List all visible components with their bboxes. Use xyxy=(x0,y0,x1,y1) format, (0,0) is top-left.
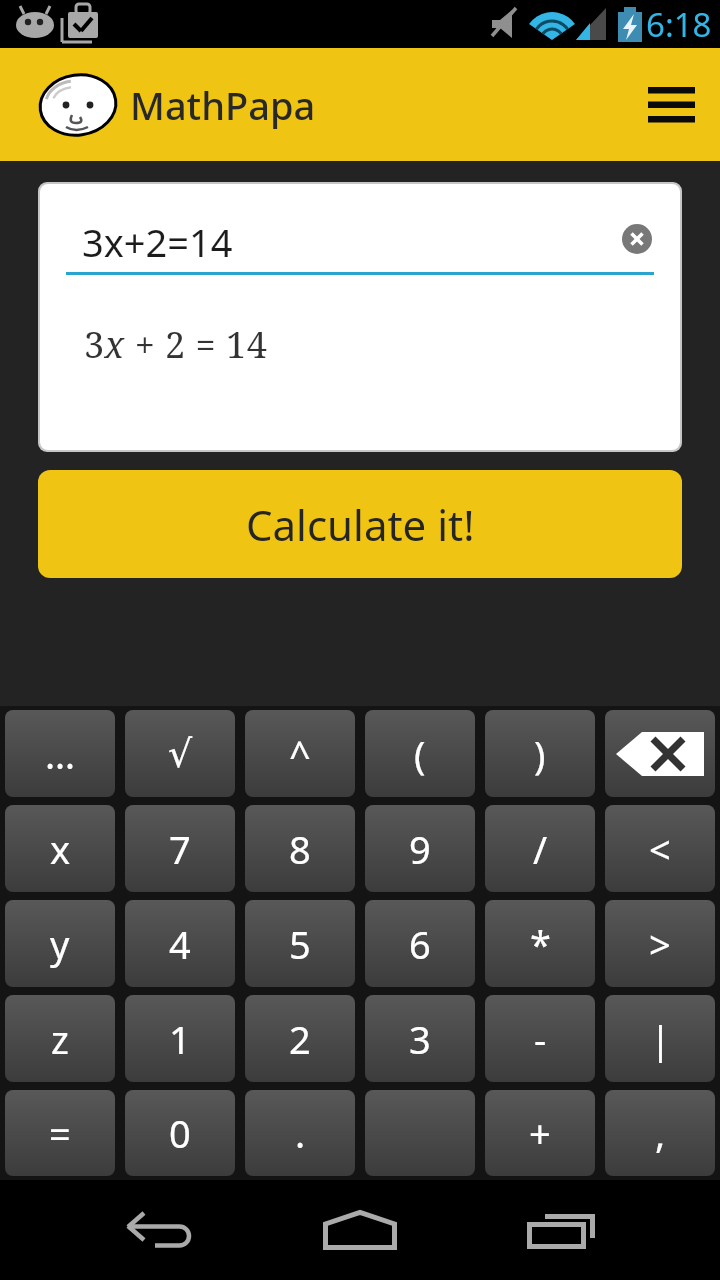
staticText: 6:18 xyxy=(646,2,712,47)
button[interactable]: ) xyxy=(485,710,595,797)
button[interactable]: 8 xyxy=(245,805,355,892)
staticText: ) xyxy=(534,728,546,780)
button[interactable]: 1 xyxy=(125,995,235,1082)
staticText: y xyxy=(50,918,70,970)
staticText: 6 xyxy=(409,918,431,970)
button[interactable]: 2 xyxy=(245,995,355,1082)
staticText: ( xyxy=(414,728,426,780)
staticText: z xyxy=(51,1013,69,1065)
staticText: 0 xyxy=(169,1107,191,1159)
button[interactable]: > xyxy=(605,900,715,987)
button[interactable]: 3 xyxy=(365,995,475,1082)
button[interactable]: < xyxy=(605,805,715,892)
staticText: = xyxy=(49,1107,71,1159)
button[interactable]: + xyxy=(485,1090,595,1176)
button[interactable]: * xyxy=(485,900,595,987)
staticText: x xyxy=(50,823,71,875)
staticText: … xyxy=(45,728,76,780)
staticText: 5 xyxy=(289,918,311,970)
staticText: MathPapa xyxy=(130,79,316,131)
staticText: + xyxy=(529,1107,551,1159)
button[interactable]: 6 xyxy=(365,900,475,987)
button[interactable]: , xyxy=(605,1090,715,1176)
staticText: 8 xyxy=(289,823,311,875)
button[interactable]: ( xyxy=(365,710,475,797)
staticText: , xyxy=(655,1107,666,1159)
button[interactable]: ^ xyxy=(245,710,355,797)
button[interactable]: - xyxy=(485,995,595,1082)
button[interactable]: 5 xyxy=(245,900,355,987)
staticText: Calculate it! xyxy=(246,496,475,553)
staticText: - xyxy=(534,1013,547,1065)
button[interactable]: 3x+2=14 xyxy=(40,184,680,272)
staticText: / xyxy=(533,823,548,875)
button[interactable]: / xyxy=(485,805,595,892)
button[interactable]: Calculate it! xyxy=(38,470,682,578)
staticText: 3x + 2 = 14 xyxy=(84,320,268,369)
staticText: 4 xyxy=(169,918,191,970)
button[interactable]: 4 xyxy=(125,900,235,987)
button[interactable] xyxy=(300,1180,420,1280)
button[interactable] xyxy=(647,81,695,129)
button[interactable]: … xyxy=(5,710,115,797)
button[interactable]: z xyxy=(5,995,115,1082)
staticText: < xyxy=(649,823,671,875)
button[interactable]: . xyxy=(245,1090,355,1176)
button[interactable]: y xyxy=(5,900,115,987)
button[interactable]: √ xyxy=(125,710,235,797)
button[interactable] xyxy=(100,1180,220,1280)
button[interactable]: 7 xyxy=(125,805,235,892)
staticText: 2 xyxy=(289,1013,311,1065)
button[interactable]: 0 xyxy=(125,1090,235,1176)
button[interactable] xyxy=(502,1180,622,1280)
staticText: | xyxy=(650,1013,671,1065)
staticText: 1 xyxy=(169,1013,191,1065)
staticText: * xyxy=(530,918,551,970)
button[interactable]: x xyxy=(5,805,115,892)
button[interactable] xyxy=(605,710,715,797)
button[interactable]: | xyxy=(605,995,715,1082)
staticText: 9 xyxy=(409,823,431,875)
button[interactable]: 9 xyxy=(365,805,475,892)
button[interactable] xyxy=(365,1090,475,1176)
staticText: 7 xyxy=(169,823,191,875)
staticText: 3 xyxy=(409,1013,431,1065)
staticText: . xyxy=(295,1107,306,1159)
staticText: √ xyxy=(168,732,193,776)
staticText: 3x+2=14 xyxy=(82,216,233,268)
button[interactable]: = xyxy=(5,1090,115,1176)
staticText: ^ xyxy=(289,728,311,780)
staticText: > xyxy=(649,918,671,970)
